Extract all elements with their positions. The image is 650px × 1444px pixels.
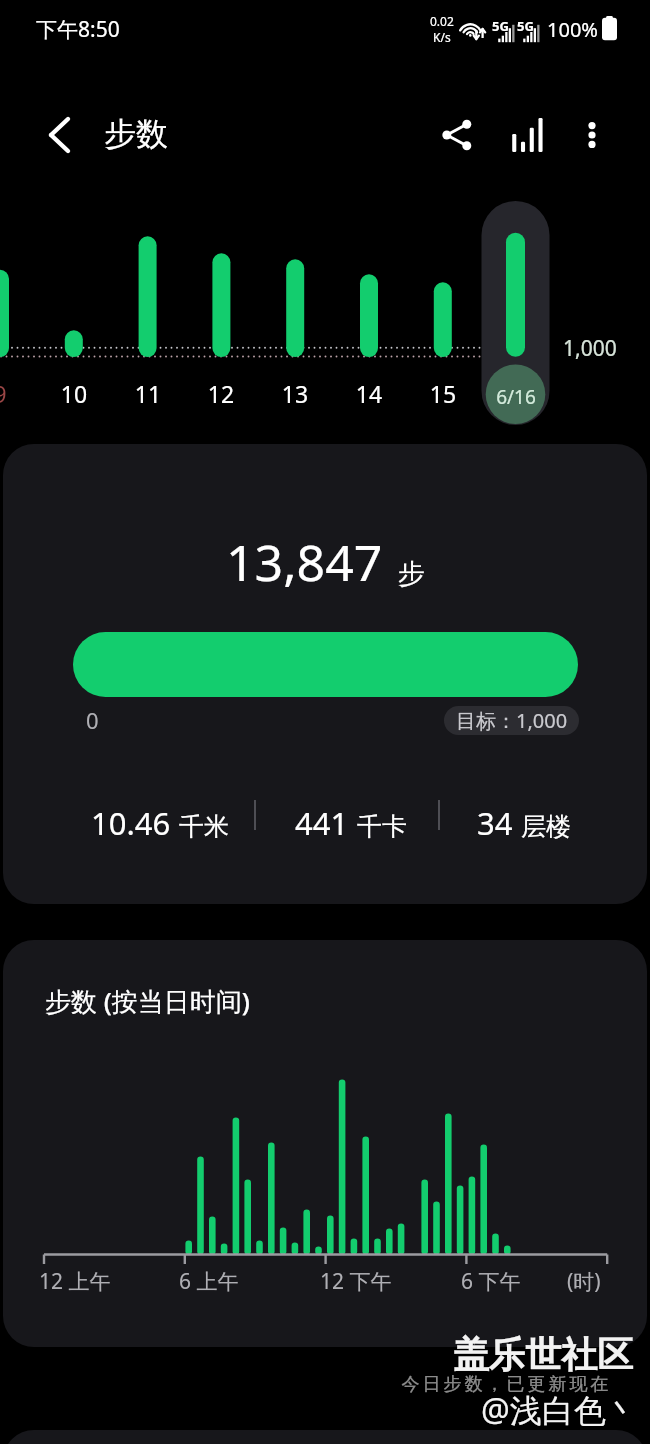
staticText: 14	[344, 378, 394, 409]
staticText: 441	[295, 802, 349, 844]
staticText: (时)	[567, 1267, 601, 1296]
staticText: 9	[0, 378, 25, 409]
button[interactable]: Day column	[0, 196, 34, 428]
staticText: 12	[196, 378, 246, 409]
staticText: 10.46	[91, 802, 171, 844]
staticText: 12 上午	[39, 1267, 111, 1296]
button[interactable]	[3, 1430, 647, 1444]
button[interactable]: 13,847	[3, 444, 647, 904]
button[interactable]: More options	[563, 106, 621, 164]
staticText: 100%	[547, 16, 598, 43]
button[interactable]: 步数 (按当日时间)	[3, 940, 647, 1347]
staticText: 0.02	[430, 13, 454, 29]
staticText: 5G	[517, 17, 534, 35]
staticText: K/s	[433, 29, 451, 45]
staticText: 1,000	[563, 334, 617, 363]
staticText: 千米	[179, 811, 229, 842]
staticText: 步	[398, 557, 425, 591]
staticText: 今日步数，已更新现在	[400, 1373, 610, 1396]
staticText: 10	[49, 378, 99, 409]
button[interactable]: Day column	[335, 196, 403, 428]
staticText: 13,847	[226, 528, 383, 596]
staticText: 下午8:50	[36, 15, 120, 44]
button[interactable]: Charts	[498, 106, 556, 164]
button[interactable]: Day column	[261, 196, 329, 428]
staticText: 目标：1,000	[456, 707, 568, 734]
button[interactable]: Day column	[40, 196, 108, 428]
staticText: @浅白色丶	[481, 1388, 638, 1432]
staticText: 6/16	[484, 384, 548, 410]
button[interactable]: Day column	[409, 196, 477, 428]
staticText: 11	[123, 378, 173, 409]
staticText: 6 下午	[461, 1267, 521, 1296]
staticText: 13	[270, 378, 320, 409]
staticText: 12 下午	[320, 1267, 392, 1296]
staticText: 15	[418, 378, 468, 409]
button[interactable]: Day column	[187, 196, 255, 428]
button[interactable]: Day column	[114, 196, 182, 428]
staticText: 0	[86, 705, 99, 735]
staticText: 步数	[104, 114, 168, 154]
staticText: 6 上午	[179, 1267, 239, 1296]
staticText: 盖乐世社区	[453, 1332, 633, 1377]
staticText: 千卡	[357, 811, 407, 842]
staticText: 5G	[492, 17, 509, 35]
staticText: 步数 (按当日时间)	[45, 983, 250, 1019]
staticText: 34	[477, 802, 513, 844]
button[interactable]: Back	[30, 106, 88, 164]
button[interactable]: Share	[428, 106, 486, 164]
staticText: 层楼	[521, 811, 571, 842]
button[interactable]: Day column	[483, 196, 551, 428]
